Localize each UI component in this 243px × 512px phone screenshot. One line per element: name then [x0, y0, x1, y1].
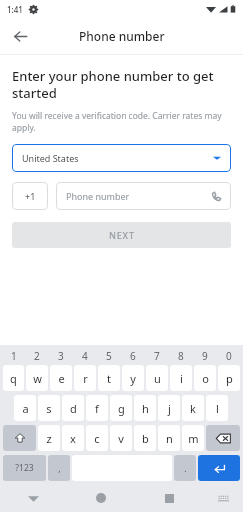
button[interactable]: n — [158, 425, 180, 451]
button[interactable]: 3 — [49, 348, 73, 364]
button[interactable]: i — [170, 365, 192, 391]
staticText: i — [180, 371, 183, 386]
staticText: Phone number — [79, 28, 165, 44]
staticText: United States — [22, 152, 79, 164]
staticText: g — [118, 401, 125, 416]
button[interactable]: j — [158, 395, 180, 421]
staticText: d — [70, 401, 77, 416]
staticText: r — [83, 371, 88, 386]
staticText: s — [46, 401, 52, 416]
button[interactable]: 1 — [2, 348, 25, 364]
staticText: 2 — [34, 349, 40, 363]
button[interactable]: 8 — [169, 348, 193, 364]
staticText: x — [70, 431, 76, 446]
button[interactable]: k — [182, 395, 204, 421]
staticText: 1 — [11, 349, 17, 363]
staticText: ?123 — [15, 462, 34, 474]
button[interactable]: g — [110, 395, 132, 421]
button[interactable]: ?123 — [3, 455, 46, 481]
button[interactable]: d — [62, 395, 84, 421]
button[interactable]: p — [218, 365, 240, 391]
button[interactable]: y — [122, 365, 144, 391]
button[interactable]: m — [182, 425, 204, 451]
staticText: q — [10, 371, 17, 386]
button[interactable]: Shift — [3, 425, 36, 451]
staticText: y — [130, 371, 136, 386]
button[interactable]: x — [62, 425, 84, 451]
button[interactable]: Phone number — [56, 182, 231, 210]
button[interactable]: Backspace — [206, 425, 240, 451]
staticText: b — [142, 431, 149, 446]
button[interactable]: e — [50, 365, 72, 391]
button[interactable]: Home — [67, 484, 135, 512]
button[interactable]: , — [48, 455, 70, 481]
staticText: 5 — [106, 349, 112, 363]
staticText: +1 — [25, 190, 36, 202]
button[interactable]: o — [194, 365, 216, 391]
staticText: Phone number — [66, 190, 130, 202]
staticText: , — [58, 462, 61, 474]
staticText: 0 — [226, 349, 232, 363]
button[interactable]: NEXT — [12, 222, 231, 248]
staticText: 1:41 — [7, 4, 23, 15]
button[interactable]: z — [38, 425, 60, 451]
staticText: 6 — [130, 349, 136, 363]
staticText: m — [188, 431, 199, 446]
staticText: h — [142, 401, 149, 416]
button[interactable]: 0 — [217, 348, 241, 364]
button[interactable]: . — [174, 455, 196, 481]
staticText: w — [33, 371, 42, 386]
staticText: . — [184, 462, 187, 474]
button[interactable]: +1 — [12, 182, 48, 210]
button[interactable]: 2 — [25, 348, 49, 364]
button[interactable]: 7 — [145, 348, 169, 364]
button[interactable]: 6 — [121, 348, 145, 364]
button[interactable]: 4 — [73, 348, 97, 364]
button[interactable]: Recents — [135, 484, 203, 512]
button[interactable]: u — [146, 365, 168, 391]
staticText: v — [118, 431, 124, 446]
button[interactable]: c — [86, 425, 108, 451]
button[interactable]: Keyboard — [203, 484, 243, 512]
staticText: e — [58, 371, 65, 386]
staticText: p — [226, 371, 233, 386]
button[interactable]: h — [134, 395, 156, 421]
staticText: a — [22, 401, 29, 416]
staticText: j — [168, 401, 171, 416]
staticText: n — [166, 431, 173, 446]
button[interactable]: 5 — [97, 348, 121, 364]
staticText: t — [107, 371, 111, 386]
button[interactable]: r — [74, 365, 96, 391]
staticText: 4 — [82, 349, 88, 363]
staticText: Enter your phone number to get started — [12, 67, 231, 102]
staticText: o — [202, 371, 209, 386]
staticText: z — [46, 431, 52, 446]
button[interactable]: l — [206, 395, 228, 421]
button[interactable]: f — [86, 395, 108, 421]
button[interactable]: Enter — [198, 455, 240, 481]
staticText: NEXT — [109, 229, 135, 241]
staticText: l — [216, 401, 219, 416]
button[interactable]: Back — [8, 24, 32, 48]
button[interactable]: t — [98, 365, 120, 391]
staticText: u — [154, 371, 161, 386]
button[interactable]: b — [134, 425, 156, 451]
button[interactable]: v — [110, 425, 132, 451]
staticText: 7 — [154, 349, 160, 363]
staticText: f — [95, 401, 99, 416]
staticText: 9 — [202, 349, 208, 363]
button[interactable]: a — [14, 395, 36, 421]
button[interactable]: s — [38, 395, 60, 421]
button[interactable]: United States — [12, 144, 231, 172]
staticText: k — [190, 401, 196, 416]
staticText: 8 — [178, 349, 184, 363]
staticText: c — [94, 431, 100, 446]
staticText: 3 — [58, 349, 64, 363]
button[interactable]: w — [26, 365, 48, 391]
button[interactable]: 9 — [193, 348, 217, 364]
button[interactable]: q — [3, 365, 24, 391]
staticText: You will receive a verification code. Ca… — [12, 110, 231, 134]
button[interactable]: Back — [0, 484, 67, 512]
